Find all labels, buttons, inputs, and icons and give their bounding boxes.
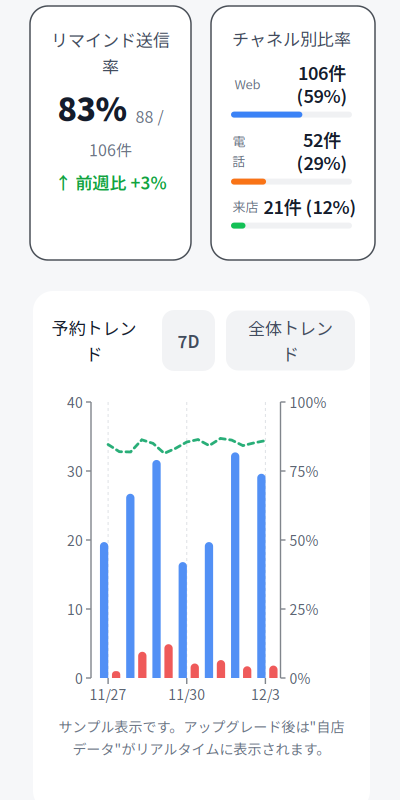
staticText: 83% (57, 84, 127, 130)
staticText: 50% (289, 530, 318, 550)
staticText: 75% (289, 461, 318, 481)
staticText: 来店 (232, 197, 258, 215)
staticText: データ"がリアルタイムに表示されます。 (72, 738, 330, 759)
staticText: 106件 (298, 59, 346, 85)
staticText: 率 (102, 54, 119, 78)
staticText: 30 (67, 461, 83, 481)
staticText: Web (234, 74, 260, 93)
staticText: 21件 (12%) (263, 193, 356, 219)
staticText: 話 (232, 151, 245, 170)
staticText: 52件 (303, 126, 341, 152)
staticText: 予約トレン (51, 315, 136, 340)
staticText: (29%) (296, 149, 347, 175)
staticText: (59%) (296, 82, 347, 108)
staticText: 40 (67, 392, 83, 412)
staticText: 20 (67, 530, 83, 550)
staticText: サンプル表示です。アップグレード後は"自店 (58, 716, 344, 736)
staticText: ド (282, 341, 299, 366)
staticText: 0% (289, 668, 310, 688)
staticText: 12/3 (251, 684, 280, 704)
staticText: 11/30 (168, 684, 205, 704)
staticText: 電 (232, 131, 245, 150)
staticText: ド (85, 341, 102, 366)
staticText: 25% (289, 599, 318, 619)
staticText: リマインド送信 (51, 27, 170, 52)
staticText: 全体トレン (248, 315, 333, 340)
staticText: 10 (67, 599, 83, 619)
staticText: チャネル別比率 (232, 26, 351, 51)
staticText: 106件 (89, 138, 132, 161)
staticText: 11/27 (90, 684, 127, 704)
staticText: ↑ 前週比 +3% (54, 170, 166, 194)
staticText: 88 / (135, 104, 163, 128)
staticText: 100% (289, 392, 326, 412)
button[interactable]: 7D (162, 310, 215, 371)
staticText: 0 (75, 668, 83, 688)
button[interactable]: 全体トレン (226, 310, 355, 370)
staticText: 7D (177, 328, 199, 353)
